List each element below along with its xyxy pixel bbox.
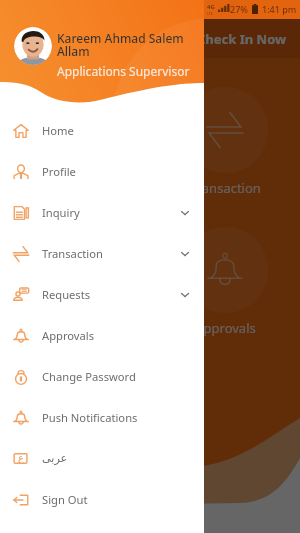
staticText: Home: [42, 123, 74, 138]
button[interactable]: Inquiry: [0, 192, 204, 233]
staticText: Push Notifications: [42, 410, 138, 425]
button[interactable]: Requests: [0, 227, 150, 337]
button[interactable]: Inquiry: [0, 87, 150, 197]
button[interactable]: Change Password: [0, 356, 204, 397]
staticText: 1:41 pm: [262, 3, 297, 15]
staticText: Profile: [42, 164, 76, 179]
staticText: 27%: [230, 3, 248, 15]
staticText: Transaction: [190, 179, 261, 197]
button[interactable]: ع: [0, 438, 204, 479]
button[interactable]: Push Notifications: [0, 397, 204, 438]
staticText: Inquiry: [42, 205, 80, 220]
button[interactable]: Approvals: [0, 315, 204, 356]
staticText: ع: [18, 452, 24, 464]
button[interactable]: Approvals: [150, 227, 300, 337]
staticText: Kareem Ahmad Salem Allam: [57, 30, 184, 60]
staticText: 4G: [207, 3, 215, 11]
staticText: Requests: [42, 287, 91, 302]
staticText: Sign Out: [42, 492, 88, 507]
staticText: عربى: [42, 452, 68, 465]
staticText: Approvals: [42, 328, 95, 343]
button[interactable]: Sign Out: [0, 479, 204, 520]
staticText: Change Password: [42, 369, 136, 384]
staticText: LTE: [207, 11, 213, 16]
button[interactable]: Check In Now: [197, 30, 287, 48]
staticText: Applications Supervisor: [57, 63, 190, 79]
button[interactable]: Open navigation drawer: [9, 30, 27, 48]
staticText: Requests: [47, 319, 103, 337]
button[interactable]: Transaction: [0, 233, 204, 274]
button[interactable]: Transaction: [150, 87, 300, 197]
button[interactable]: Profile: [0, 151, 204, 192]
staticText: Check In Now: [197, 30, 287, 48]
staticText: Transaction: [42, 246, 103, 261]
staticText: Approvals: [195, 319, 256, 337]
button[interactable]: Home: [0, 110, 204, 151]
button[interactable]: Requests: [0, 274, 204, 315]
